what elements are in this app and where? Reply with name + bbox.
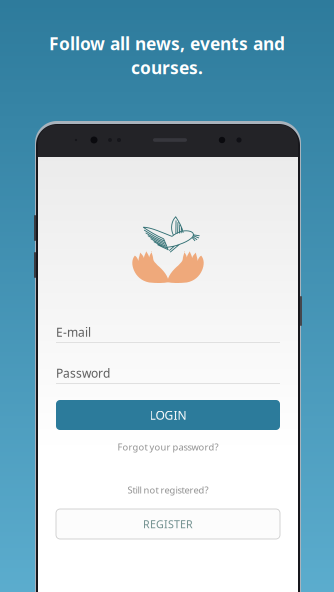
button[interactable]: LOGIN (56, 400, 280, 430)
staticText: courses. (131, 56, 203, 79)
staticText: LOGIN (149, 407, 186, 423)
button[interactable]: REGISTER (56, 509, 280, 539)
staticText: Forgot your password? (117, 441, 218, 453)
staticText: Still not registered? (127, 484, 208, 496)
button[interactable]: Forgot your password? (56, 440, 280, 454)
staticText: Password (56, 365, 110, 381)
staticText: Follow all news, events and (49, 32, 285, 55)
staticText: E-mail (56, 324, 91, 340)
staticText: REGISTER (143, 517, 193, 531)
